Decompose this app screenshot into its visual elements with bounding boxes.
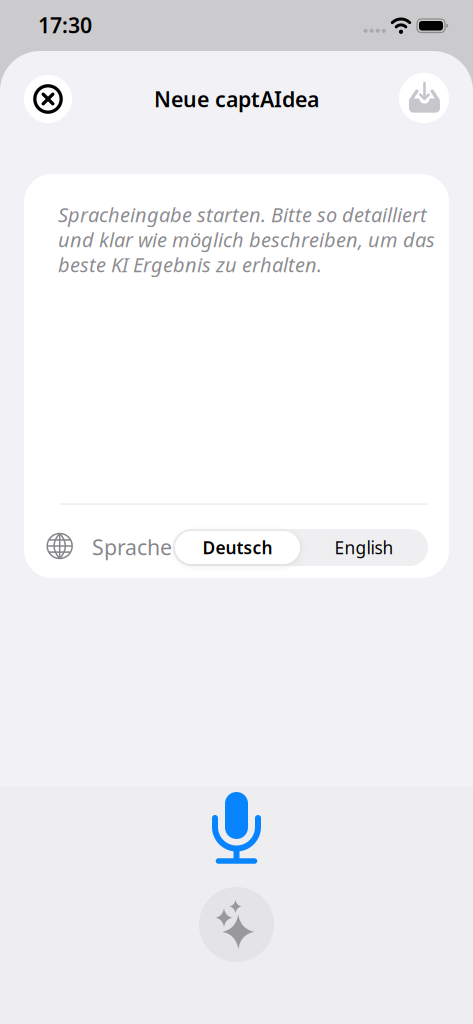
staticText: und klar wie möglich beschreiben, um das [58,226,435,253]
staticText: English [334,536,393,559]
staticText: Deutsch [202,536,272,559]
button[interactable]: Deutsch [175,531,300,564]
staticText: Neue captAIdea [154,85,319,113]
button[interactable]: Schließen [24,75,72,123]
staticText: beste KI Ergebnis zu erhalten. [58,251,322,278]
button[interactable]: Spracheingabe [212,792,261,864]
button[interactable]: KI generieren [199,887,274,962]
staticText: Spracheingabe starten. Bitte so detailli… [58,201,427,228]
button[interactable]: Importieren [399,73,449,123]
staticText: 17:30 [38,11,92,39]
button[interactable]: English [301,531,427,564]
staticText: Sprache [92,533,172,561]
